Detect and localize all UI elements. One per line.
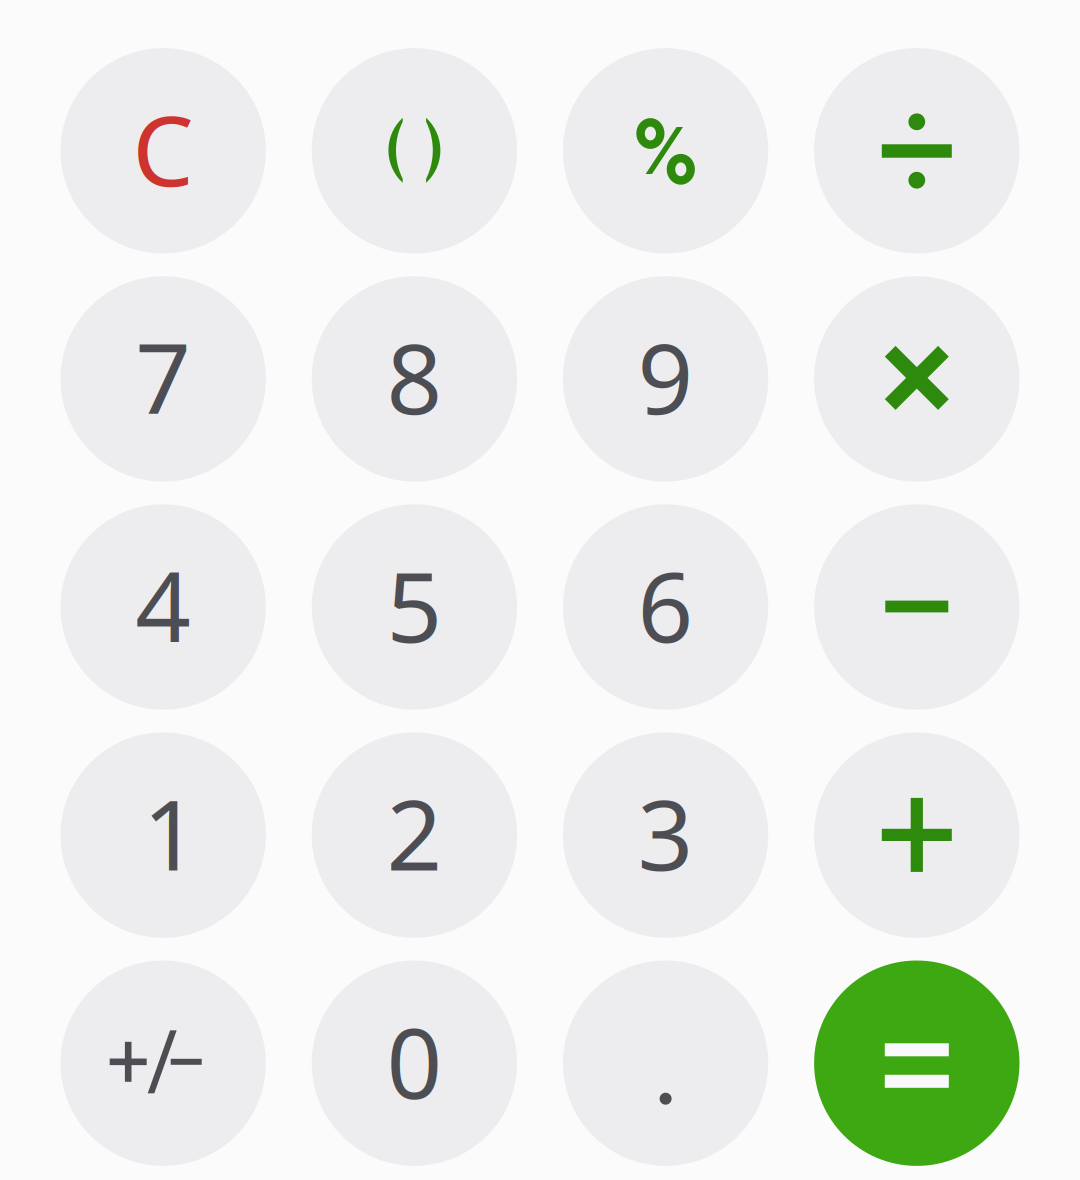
button[interactable]: C — [60, 48, 266, 253]
button[interactable]: 2 — [312, 732, 517, 938]
staticText: 6 — [638, 540, 694, 669]
button[interactable]: 4 — [60, 504, 266, 710]
staticText: 1 — [143, 768, 199, 897]
staticText: C — [132, 84, 194, 213]
staticText: 5 — [386, 540, 442, 669]
staticText: 8 — [386, 312, 442, 441]
button[interactable]: Percent — [563, 48, 768, 253]
button[interactable]: 1 — [60, 732, 266, 938]
staticText: 2 — [386, 768, 442, 897]
button[interactable]: 6 — [563, 504, 768, 710]
button[interactable]: 7 — [60, 276, 266, 482]
staticText: 4 — [135, 540, 191, 669]
staticText: 9 — [638, 312, 694, 441]
button[interactable]: 3 — [563, 732, 768, 938]
staticText: 7 — [135, 312, 191, 441]
staticText: 3 — [638, 768, 694, 897]
button[interactable]: Parentheses — [312, 48, 517, 253]
button[interactable]: 9 — [563, 276, 768, 482]
button[interactable]: Divide — [814, 48, 1019, 253]
button[interactable]: 5 — [312, 504, 517, 710]
button[interactable]: Multiply — [814, 276, 1019, 482]
button[interactable]: Add — [814, 732, 1019, 938]
button[interactable]: 0 — [312, 960, 517, 1166]
button[interactable]: 8 — [312, 276, 517, 482]
button[interactable]: Subtract — [814, 504, 1019, 710]
button[interactable]: Plus minus — [60, 960, 266, 1166]
staticText: 0 — [386, 996, 442, 1126]
button[interactable]: Decimal point — [563, 960, 768, 1166]
button[interactable]: Equals — [814, 960, 1019, 1166]
